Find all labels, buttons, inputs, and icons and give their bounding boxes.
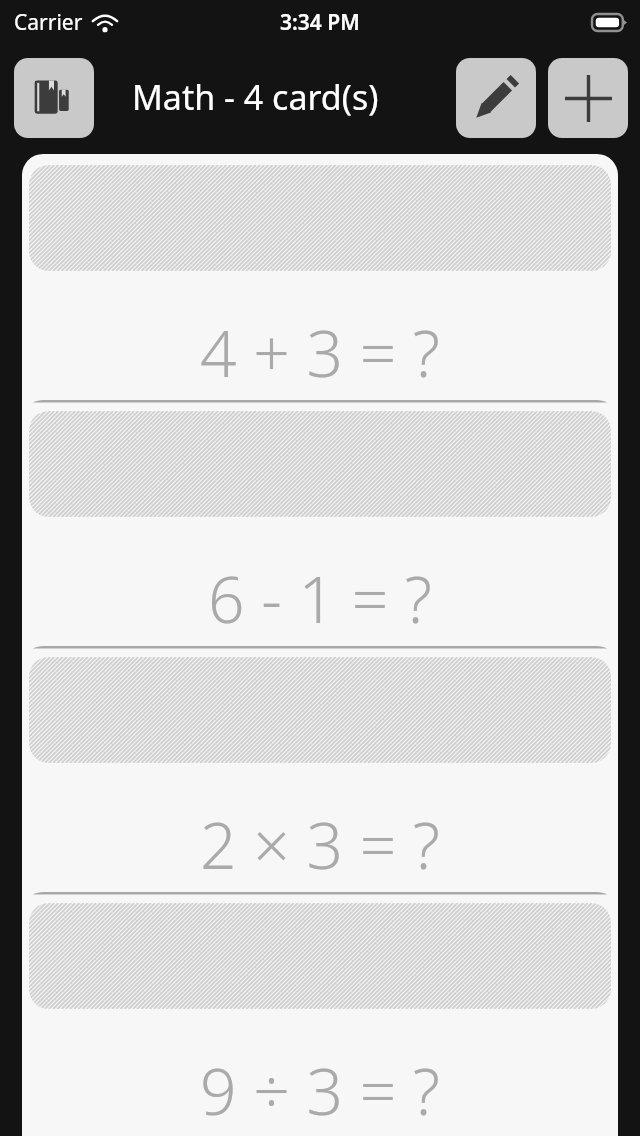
button[interactable]: Card sets (14, 58, 94, 138)
staticText: 6 - 1 = ? (22, 555, 618, 642)
button[interactable]: 2 × 3 = ? (22, 646, 618, 1066)
staticText: 2 × 3 = ? (22, 801, 618, 888)
staticText: Math - 4 card(s) (132, 74, 379, 120)
button[interactable]: 9 ÷ 3 = ? (22, 892, 618, 1136)
button[interactable]: 6 - 1 = ? (22, 400, 618, 820)
staticText: 9 ÷ 3 = ? (22, 1047, 618, 1134)
button[interactable]: 4 + 3 = ? (22, 154, 618, 574)
staticText: 3:34 PM (280, 8, 360, 37)
button[interactable]: Edit (456, 58, 536, 138)
staticText: Carrier (14, 8, 83, 37)
staticText: 4 + 3 = ? (22, 309, 618, 396)
button[interactable]: Add card (548, 58, 628, 138)
